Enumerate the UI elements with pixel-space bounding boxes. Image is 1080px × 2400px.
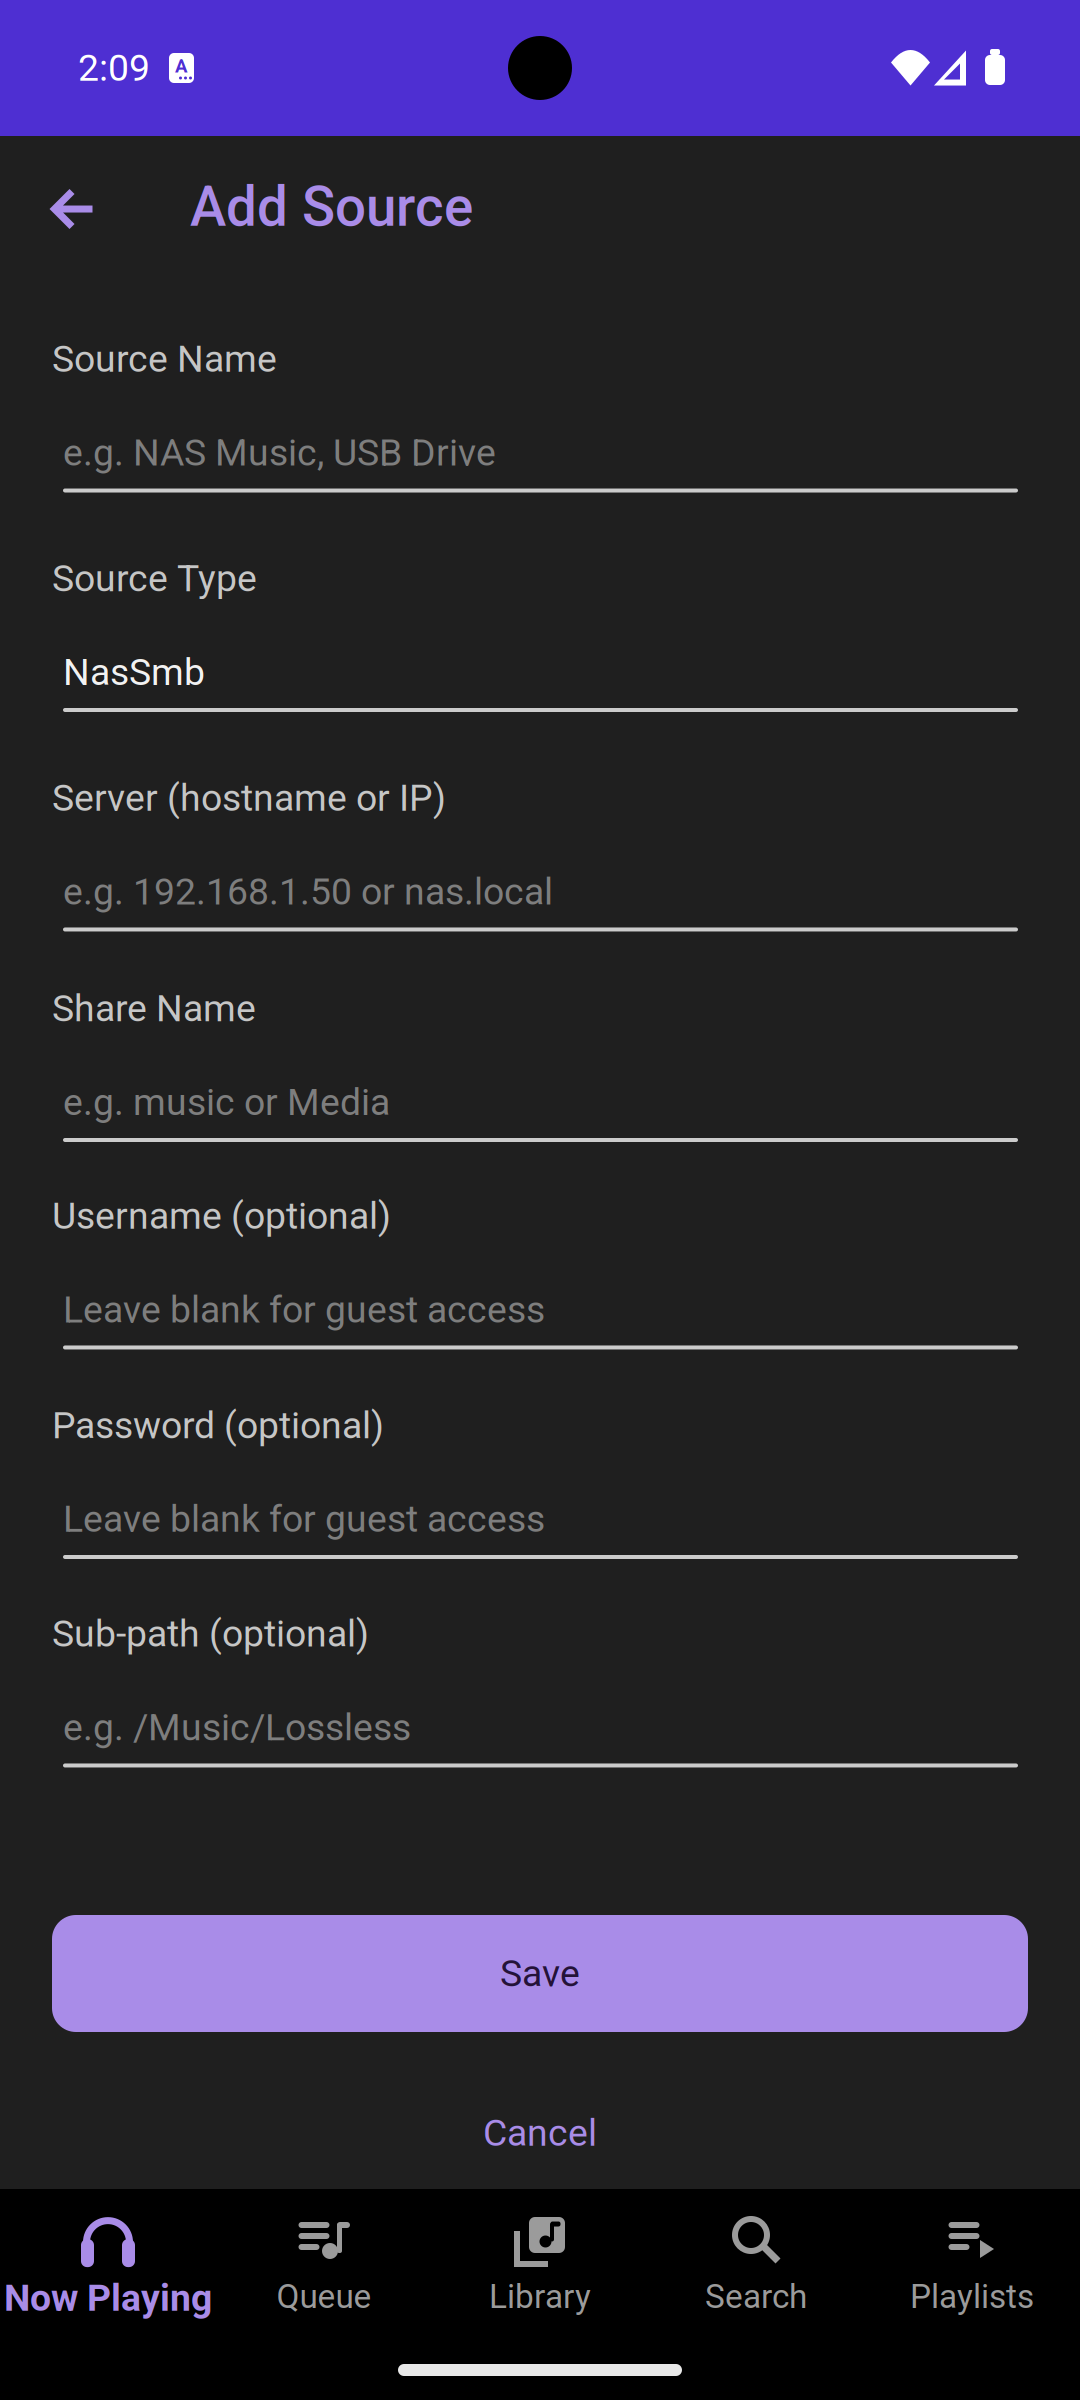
staticText: Search [705,2277,807,2316]
staticText: Source Type [52,556,257,600]
staticText: Playlists [910,2277,1034,2316]
staticText: e.g. 192.168.1.50 or nas.local [63,870,553,913]
button[interactable]: Queue [216,2189,432,2319]
staticText: e.g. /Music/Lossless [63,1706,411,1749]
button[interactable]: Save [52,1915,1028,2032]
staticText: Cancel [483,2111,597,2155]
staticText: e.g. music or Media [63,1080,390,1124]
staticText: Now Playing [4,2276,212,2320]
staticText: Share Name [52,986,256,1030]
button[interactable]: Cancel [390,2101,690,2165]
staticText: Username (optional) [52,1194,391,1238]
staticText: e.g. NAS Music, USB Drive [63,431,496,474]
button[interactable]: Playlists [864,2189,1080,2319]
staticText: Server (hostname or IP) [52,776,446,820]
button[interactable]: Library [432,2189,648,2319]
staticText: NasSmb [63,650,205,694]
staticText: Password (optional) [52,1403,384,1447]
button[interactable]: Back [26,153,122,261]
staticText: Library [489,2277,591,2316]
staticText: Save [500,1952,580,1995]
staticText: Add Source [190,175,473,239]
staticText: Leave blank for guest access [63,1288,545,1331]
staticText: 2:09 [78,46,150,90]
staticText: A [175,55,188,77]
button[interactable]: Search [648,2189,864,2319]
staticText: Sub-path (optional) [52,1612,369,1656]
staticText: Queue [276,2277,371,2316]
button[interactable]: Now Playing [0,2189,216,2319]
staticText: Leave blank for guest access [63,1497,545,1541]
staticText: Source Name [52,337,277,381]
